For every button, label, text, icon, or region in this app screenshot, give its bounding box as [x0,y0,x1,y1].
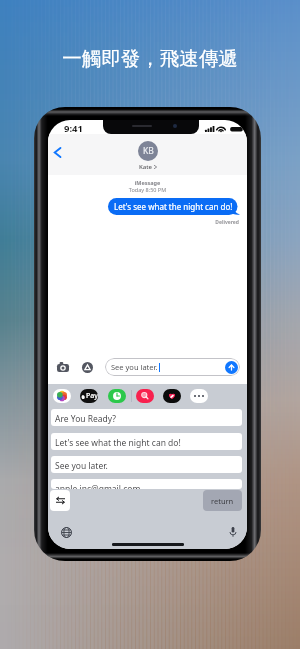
button[interactable]: Back [48,142,67,162]
staticText: apple.inc@gmail.com [55,483,141,489]
button[interactable]: Switch keyboard [50,490,70,511]
staticText: iMessage [48,179,247,186]
button[interactable]: Images [136,389,154,403]
button[interactable]: Globe [60,526,72,538]
button[interactable]: KB [138,141,158,171]
staticText: Let's see what the night can do! [55,437,181,449]
staticText: 9:41 [64,122,83,135]
staticText: See you later. [111,362,158,372]
staticText: Kate [139,163,152,171]
staticText: Are You Ready? [55,413,117,425]
button[interactable]: App Store [78,358,96,376]
staticText: Delivered [48,219,239,226]
button[interactable]: See you later. [51,456,242,473]
button[interactable]: Send [225,361,238,374]
button[interactable]: Apple Pay [80,389,98,403]
button[interactable]: Camera [54,358,72,376]
staticText: return [211,496,234,506]
staticText: KB [143,145,154,157]
button[interactable]: Music [163,389,181,403]
button[interactable]: More apps [190,389,208,403]
staticText: Today 8:50 PM [48,186,247,193]
staticText: Let's see what the night can do! [114,201,233,212]
button[interactable]: Microphone [227,526,239,538]
button[interactable]: apple.inc@gmail.com [51,479,242,489]
staticText: Pay [86,391,98,401]
button[interactable]: Are You Ready? [51,409,242,426]
button[interactable]: Recents [108,389,126,403]
button[interactable]: Let's see what the night can do! [51,433,242,450]
button[interactable]: return [203,490,242,511]
button[interactable]: Photos [53,389,71,403]
button[interactable]: See you later. [105,358,240,376]
staticText: See you later. [55,460,108,472]
staticText: 一觸即發，飛速傳遞 [0,46,300,71]
